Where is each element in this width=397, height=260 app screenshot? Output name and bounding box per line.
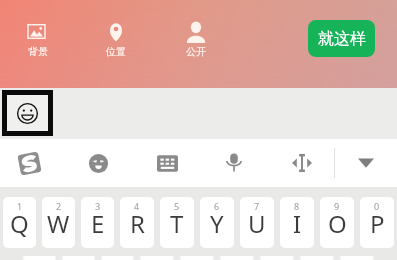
button[interactable]: 7 xyxy=(240,197,274,248)
button[interactable]: 9 xyxy=(320,197,354,248)
staticText: 0 xyxy=(374,200,380,212)
button[interactable]: 5 xyxy=(160,197,194,248)
button[interactable]: 1 xyxy=(3,197,36,248)
staticText: 就这样 xyxy=(318,29,366,49)
button[interactable]: 0 xyxy=(360,197,394,248)
staticText: T xyxy=(170,207,184,240)
button[interactable]: Move cursor xyxy=(283,144,321,182)
staticText: O xyxy=(328,207,347,240)
button[interactable]: 8 xyxy=(280,197,314,248)
button[interactable]: 位置 xyxy=(76,0,156,88)
button[interactable]: 6 xyxy=(200,197,234,248)
staticText: 背景 xyxy=(28,45,48,58)
staticText: R xyxy=(130,207,145,240)
staticText: Q xyxy=(10,207,29,240)
staticText: I xyxy=(293,207,302,240)
staticText: 7 xyxy=(254,200,260,212)
button[interactable]: Sogou input method xyxy=(10,144,48,182)
button[interactable]: 就这样 xyxy=(308,20,375,57)
button[interactable]: Voice input xyxy=(215,144,253,182)
button[interactable]: Hide keyboard xyxy=(347,144,385,182)
staticText: 2 xyxy=(56,200,62,212)
staticText: 1 xyxy=(17,200,23,212)
staticText: 8 xyxy=(294,200,300,212)
staticText: Y xyxy=(210,207,224,240)
staticText: E xyxy=(91,207,105,240)
staticText: 公开 xyxy=(186,45,206,58)
button[interactable]: 背景 xyxy=(0,0,76,88)
button[interactable]: Emoji xyxy=(79,144,117,182)
button[interactable]: Emoji xyxy=(7,95,48,131)
button[interactable]: 4 xyxy=(120,197,154,248)
staticText: 5 xyxy=(174,200,180,212)
staticText: U xyxy=(248,207,266,240)
staticText: 位置 xyxy=(106,45,126,58)
button[interactable]: 公开 xyxy=(156,0,236,88)
button[interactable]: Keyboard layout xyxy=(148,144,186,182)
staticText: 4 xyxy=(134,200,140,212)
staticText: P xyxy=(370,207,385,240)
staticText: 3 xyxy=(95,200,101,212)
button[interactable]: 2 xyxy=(42,197,75,248)
staticText: 9 xyxy=(334,200,340,212)
staticText: 6 xyxy=(214,200,220,212)
staticText: W xyxy=(47,207,70,240)
button[interactable]: 3 xyxy=(81,197,114,248)
